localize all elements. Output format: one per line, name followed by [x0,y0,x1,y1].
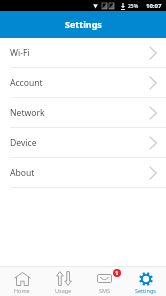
staticText: 10:07 [146,2,162,10]
staticText: Home [14,287,30,294]
staticText: Wi-Fi [10,47,30,59]
button[interactable]: About [0,158,166,188]
button[interactable]: Device [0,128,166,158]
staticText: Network [10,107,45,119]
staticText: Settings [65,18,102,30]
staticText: About [10,167,35,179]
button[interactable]: Account [0,68,166,98]
staticText: Usage [55,287,72,294]
button[interactable]: SMS [84,269,125,294]
staticText: 1 [115,269,119,277]
button[interactable]: Network [0,98,166,128]
staticText: Account [10,77,43,89]
button[interactable]: Wi-Fi [0,38,166,68]
staticText: SMS [99,287,111,294]
button[interactable]: Home [1,269,43,294]
staticText: Device [10,137,37,149]
staticText: Settings [135,287,156,294]
button[interactable]: Settings [125,269,166,294]
staticText: 25% [128,3,139,10]
button[interactable]: Usage [43,269,84,294]
